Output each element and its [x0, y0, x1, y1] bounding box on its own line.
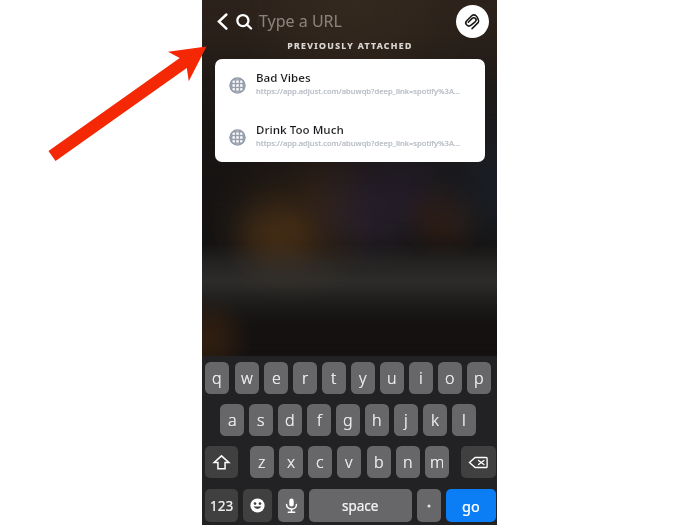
button[interactable]: Backspace [461, 446, 496, 478]
button[interactable]: r [293, 362, 317, 394]
button[interactable]: Emoji [243, 489, 272, 522]
staticText: t [331, 367, 337, 389]
staticText: b [374, 451, 384, 473]
button[interactable]: d [278, 404, 302, 436]
button[interactable]: c [308, 446, 332, 478]
staticText: o [445, 367, 455, 389]
button[interactable]: e [264, 362, 288, 394]
button[interactable]: Drink Too Much [215, 111, 485, 162]
staticText: https://app.adjust.com/abuwqb?deep_link=… [256, 86, 461, 96]
button[interactable]: s [249, 404, 273, 436]
button[interactable]: i [409, 362, 433, 394]
staticText: Drink Too Much [256, 122, 344, 138]
button[interactable]: h [365, 404, 389, 436]
staticText: d [285, 409, 295, 431]
staticText: PREVIOUSLY ATTACHED [287, 40, 413, 52]
staticText: q [212, 367, 222, 389]
button[interactable]: w [235, 362, 259, 394]
staticText: e [272, 367, 281, 389]
button[interactable]: n [396, 446, 420, 478]
button[interactable]: 123 [205, 489, 238, 522]
staticText: c [316, 451, 324, 473]
staticText: f [317, 409, 322, 431]
staticText: m [430, 451, 445, 473]
button[interactable]: Search [231, 8, 255, 32]
button[interactable]: Back [210, 7, 236, 33]
staticText: space [342, 497, 379, 515]
staticText: l [462, 409, 466, 431]
button[interactable]: f [307, 404, 331, 436]
button[interactable]: q [205, 362, 229, 394]
staticText: n [403, 451, 413, 473]
button[interactable]: Voice input [278, 489, 304, 522]
button[interactable]: space [309, 489, 412, 522]
button[interactable]: Attach [456, 5, 489, 38]
button[interactable]: j [394, 404, 418, 436]
staticText: j [404, 409, 408, 431]
staticText: h [372, 409, 382, 431]
button[interactable]: a [220, 404, 244, 436]
staticText: g [343, 409, 353, 431]
staticText: i [419, 367, 423, 389]
staticText: Bad Vibes [256, 70, 311, 86]
staticText: a [228, 409, 237, 431]
button[interactable]: t [322, 362, 346, 394]
button[interactable]: b [367, 446, 391, 478]
staticText: go [462, 496, 480, 516]
staticText: u [387, 367, 397, 389]
button[interactable]: v [337, 446, 361, 478]
staticText: z [258, 451, 266, 473]
button[interactable]: p [467, 362, 491, 394]
button[interactable]: y [351, 362, 375, 394]
staticText: https://app.adjust.com/abuwqb?deep_link=… [256, 138, 461, 148]
staticText: s [257, 409, 265, 431]
button[interactable]: m [425, 446, 449, 478]
staticText: r [302, 367, 309, 389]
button[interactable]: o [438, 362, 462, 394]
button[interactable]: l [452, 404, 476, 436]
staticText: x [287, 451, 296, 473]
staticText: Type a URL [259, 10, 342, 32]
button[interactable]: x [279, 446, 303, 478]
staticText: w [241, 367, 253, 389]
button[interactable]: go [446, 489, 496, 522]
button[interactable]: g [336, 404, 360, 436]
button[interactable]: k [423, 404, 447, 436]
staticText: p [474, 367, 484, 389]
button[interactable]: Shift [205, 446, 238, 478]
staticText: v [345, 451, 353, 473]
staticText: 123 [210, 497, 234, 515]
button[interactable]: u [380, 362, 404, 394]
button[interactable]: Bad Vibes [215, 59, 485, 111]
button[interactable]: z [250, 446, 274, 478]
staticText: y [359, 367, 367, 389]
staticText: k [431, 409, 439, 431]
button[interactable]: Period [417, 489, 441, 522]
